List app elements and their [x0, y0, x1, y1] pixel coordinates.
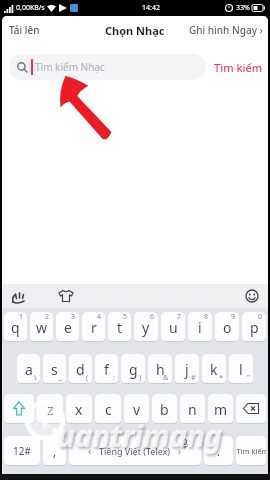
staticText: k [210, 360, 218, 379]
staticText: 5 [123, 312, 128, 322]
staticText: u [169, 318, 178, 337]
staticText: , [53, 443, 57, 459]
staticText: _ [59, 373, 63, 383]
staticText: 0,00KB/s [16, 3, 45, 13]
staticText: h [156, 360, 165, 379]
button[interactable]: , [43, 436, 66, 466]
staticText: ‹ [88, 444, 92, 458]
button[interactable]: f [95, 354, 118, 384]
staticText: j [185, 360, 189, 379]
button[interactable]: j [175, 354, 199, 384]
button[interactable]: c [95, 394, 121, 424]
staticText: x [75, 400, 83, 419]
button[interactable]: k [202, 354, 226, 384]
staticText: l [239, 360, 243, 379]
staticText: s [51, 360, 58, 379]
staticText: 12# [13, 444, 31, 458]
staticText: 7 [177, 312, 182, 322]
staticText: z [47, 400, 54, 419]
button[interactable]: z [37, 394, 63, 424]
button[interactable]: Tìm kiếm [236, 436, 266, 466]
button[interactable]: r [82, 312, 105, 342]
button[interactable]: n [180, 394, 205, 424]
button[interactable]: i [188, 312, 212, 342]
button[interactable]: x [66, 394, 92, 424]
button[interactable]: t [108, 312, 131, 342]
button[interactable] [11, 289, 26, 304]
staticText: uantrimang [57, 415, 222, 456]
staticText: d [76, 360, 85, 379]
button[interactable]: y [134, 312, 158, 342]
staticText: . [217, 443, 221, 459]
staticText: Tiếng Việt (Telex) [99, 445, 171, 457]
staticText: o [223, 318, 232, 337]
button[interactable]: Chọn Nhạc [105, 23, 165, 38]
staticText: 14:42 [142, 3, 160, 13]
button[interactable]: Tìm kiếm [214, 60, 263, 75]
button[interactable]: 12# [4, 436, 40, 466]
button[interactable]: d [69, 354, 92, 384]
button[interactable] [245, 289, 259, 303]
button[interactable]: u [161, 312, 185, 342]
button[interactable]: . [204, 436, 233, 466]
staticText: a [25, 360, 33, 379]
staticText: m [214, 400, 228, 419]
staticText: i [198, 318, 202, 337]
staticText: 6 [150, 312, 155, 322]
staticText: 33% [236, 3, 250, 13]
button[interactable]: q [4, 312, 27, 342]
staticText: 0 [258, 312, 263, 322]
staticText: y [142, 318, 150, 337]
button[interactable] [4, 394, 34, 424]
button[interactable]: Tìm kiếm Nhạc [17, 54, 206, 80]
staticText: q [11, 318, 20, 337]
staticText: v [133, 400, 141, 419]
staticText: 1 [19, 312, 24, 322]
button[interactable]: l [229, 354, 253, 384]
staticText: * [219, 373, 223, 383]
staticText: : [113, 373, 115, 383]
button[interactable]: v [124, 394, 149, 424]
staticText: " [247, 373, 250, 383]
staticText: \ [34, 373, 37, 383]
staticText: ( [86, 373, 89, 383]
staticText: p [250, 318, 259, 337]
button[interactable]: Tải lên [9, 23, 40, 37]
staticText: b [160, 400, 169, 419]
staticText: n [188, 400, 197, 419]
button[interactable]: h [148, 354, 172, 384]
staticText: & [163, 373, 169, 383]
button[interactable] [236, 394, 266, 424]
staticText: Tìm kiếm [236, 446, 266, 456]
staticText: f [104, 360, 109, 379]
staticText: 3 [71, 312, 76, 322]
button[interactable]: w [30, 312, 53, 342]
staticText: 9 [231, 312, 236, 322]
button[interactable]: b [152, 394, 177, 424]
button[interactable]: p [242, 312, 266, 342]
button[interactable]: Ghi hình Ngay › [189, 23, 263, 37]
staticText: ) [139, 373, 142, 383]
staticText: # [191, 373, 196, 383]
button[interactable]: e [56, 312, 79, 342]
button[interactable]: m [208, 394, 233, 424]
staticText: t [117, 318, 123, 337]
button[interactable]: g [121, 354, 145, 384]
staticText: 2 [45, 312, 50, 322]
button[interactable]: ‹ [69, 436, 201, 466]
staticText: 4 [97, 312, 102, 322]
staticText: r [91, 318, 97, 337]
button[interactable] [58, 288, 74, 304]
staticText: › [178, 444, 182, 458]
button[interactable]: s [43, 354, 66, 384]
staticText: 8 [204, 312, 209, 322]
staticText: Tìm kiếm Nhạc [35, 60, 105, 74]
staticText: c [105, 400, 112, 419]
staticText: w [36, 318, 48, 337]
staticText: e [64, 318, 72, 337]
button[interactable]: a [17, 354, 40, 384]
button[interactable]: o [215, 312, 239, 342]
staticText: g [129, 360, 138, 379]
